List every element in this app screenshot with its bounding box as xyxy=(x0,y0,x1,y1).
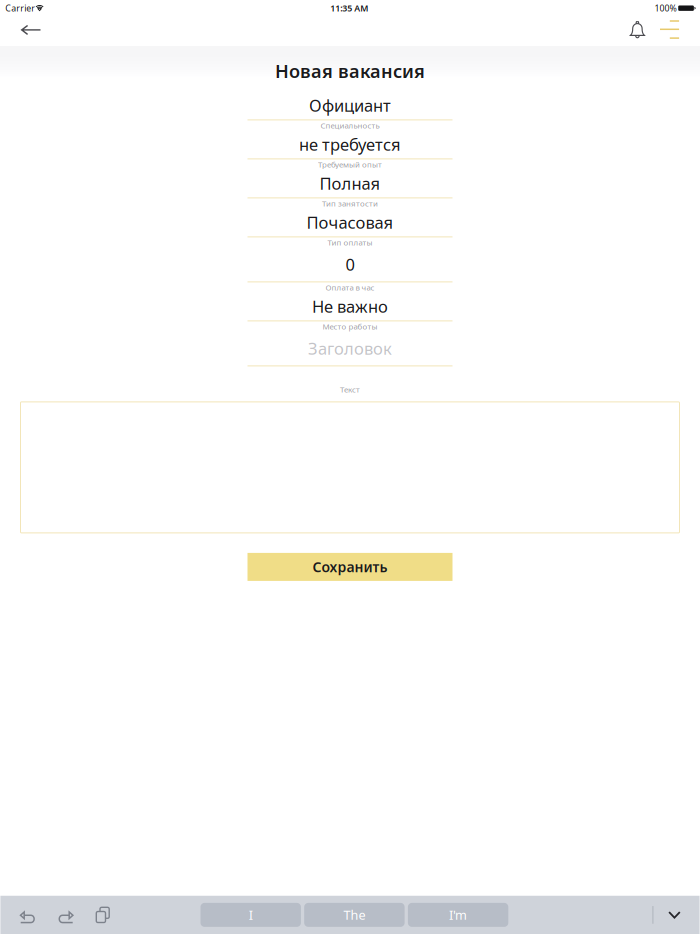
staticText: Текст xyxy=(340,384,360,395)
button[interactable]: The xyxy=(304,903,405,927)
button[interactable]: Сохранить xyxy=(247,553,452,581)
staticText: Почасовая xyxy=(306,211,393,234)
button[interactable]: Redo xyxy=(51,896,80,934)
staticText: Место работы xyxy=(322,321,377,332)
button[interactable]: Paste xyxy=(90,896,116,934)
button[interactable]: Notifications xyxy=(623,18,652,46)
button[interactable]: Back xyxy=(0,18,55,46)
staticText: Оплата в час xyxy=(325,282,374,293)
staticText: Требуемый опыт xyxy=(318,159,382,170)
staticText: 100% xyxy=(655,2,677,14)
staticText: Полная xyxy=(319,172,380,195)
staticText: 11:35 AM xyxy=(330,2,368,14)
staticText: I xyxy=(249,906,253,923)
staticText: Тип занятости xyxy=(322,198,378,209)
button[interactable]: I xyxy=(200,903,301,927)
staticText: Не важно xyxy=(312,295,388,318)
button[interactable]: Menu xyxy=(654,18,685,46)
staticText: 0 xyxy=(345,253,354,276)
staticText: I'm xyxy=(449,906,467,923)
staticText: The xyxy=(343,906,365,923)
staticText: Carrier xyxy=(5,2,35,14)
staticText: Новая вакансия xyxy=(275,59,425,83)
button[interactable]: Undo xyxy=(14,896,42,934)
button[interactable]: I'm xyxy=(408,903,508,927)
button[interactable]: Hide keyboard xyxy=(662,902,687,928)
staticText: Специальность xyxy=(320,120,379,131)
staticText: Тип оплаты xyxy=(327,237,372,248)
staticText: не требуется xyxy=(299,133,401,156)
staticText: Официант xyxy=(309,94,391,117)
staticText: Сохранить xyxy=(312,557,387,576)
staticText: Заголовок xyxy=(308,337,392,360)
